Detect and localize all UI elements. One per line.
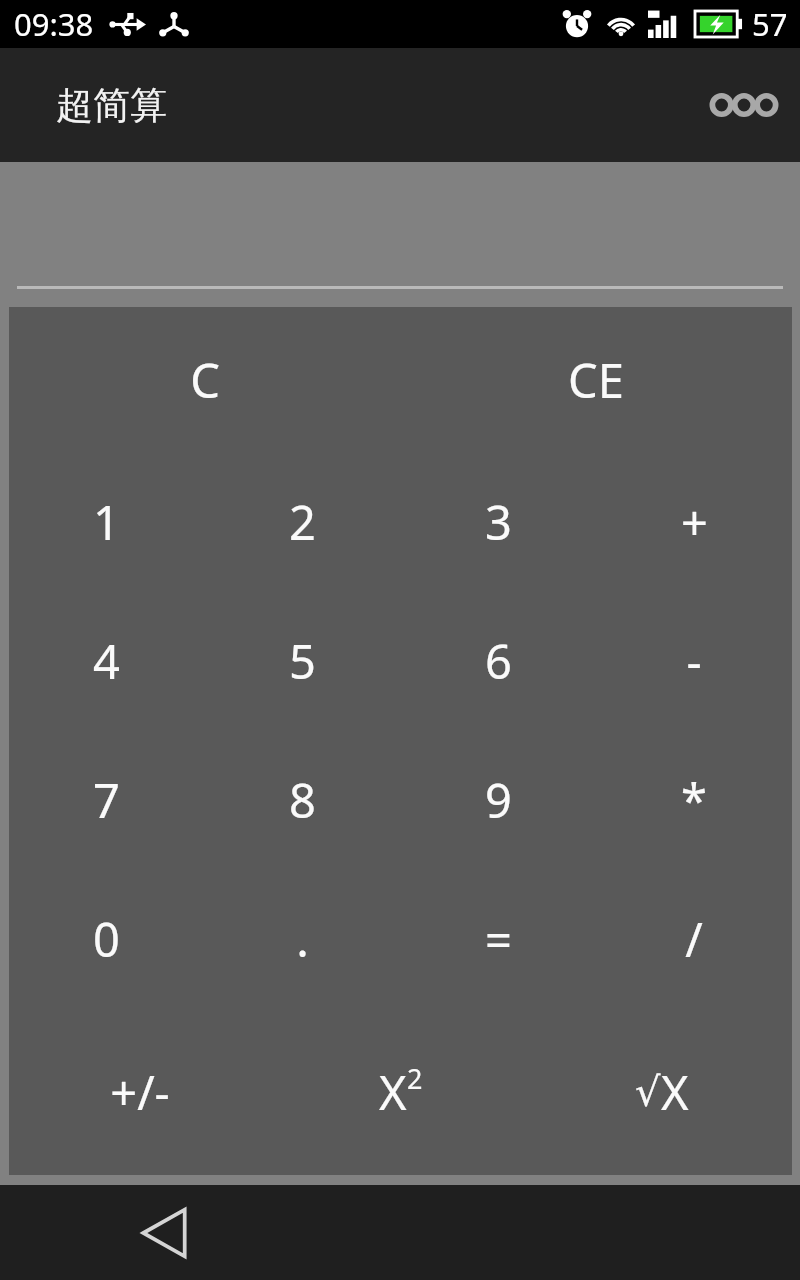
staticText: 2	[407, 1060, 423, 1097]
staticText: /	[685, 907, 703, 971]
button[interactable]: -	[596, 591, 792, 730]
staticText: +	[681, 490, 708, 554]
staticText: 1	[93, 490, 120, 554]
staticText: 57	[752, 3, 788, 45]
staticText: 4	[93, 629, 120, 693]
button[interactable]: 9	[400, 730, 596, 869]
button[interactable]: *	[596, 730, 792, 869]
staticText: √	[635, 1069, 661, 1116]
staticText: =	[485, 907, 512, 971]
button[interactable]: +	[596, 452, 792, 591]
staticText: 2	[289, 490, 316, 554]
button[interactable]: 8	[204, 730, 400, 869]
button[interactable]: 2	[204, 452, 400, 591]
staticText: CE	[568, 348, 624, 412]
button[interactable]: 5	[204, 591, 400, 730]
button[interactable]: 7	[9, 730, 204, 869]
staticText: 3	[485, 490, 512, 554]
button[interactable]: Back	[118, 1187, 210, 1279]
staticText: -	[686, 629, 702, 693]
button[interactable]: More options	[702, 70, 786, 140]
button[interactable]: +/-	[9, 1008, 270, 1175]
staticText: *	[681, 768, 707, 832]
staticText: 超简算	[56, 82, 167, 129]
staticText: X	[379, 1060, 407, 1124]
staticText: 7	[93, 768, 120, 832]
button[interactable]: C	[9, 307, 400, 452]
button[interactable]: 1	[9, 452, 204, 591]
staticText: 6	[485, 629, 512, 693]
button[interactable]: =	[400, 869, 596, 1008]
staticText: C	[190, 348, 220, 412]
staticText: .	[296, 907, 309, 971]
staticText: 0	[93, 907, 120, 971]
staticText: 9	[485, 768, 512, 832]
button[interactable]: √	[531, 1008, 792, 1175]
staticText: 8	[289, 768, 316, 832]
staticText: +/-	[110, 1060, 170, 1124]
button[interactable]: 0	[9, 869, 204, 1008]
button[interactable]: CE	[400, 307, 792, 452]
button[interactable]: 4	[9, 591, 204, 730]
button[interactable]: X	[270, 1008, 531, 1175]
staticText: 5	[289, 629, 316, 693]
button[interactable]: 6	[400, 591, 596, 730]
staticText: 09:38	[14, 3, 94, 45]
button[interactable]: /	[596, 869, 792, 1008]
staticText: X	[661, 1060, 689, 1124]
button[interactable]: .	[204, 869, 400, 1008]
button[interactable]: 3	[400, 452, 596, 591]
